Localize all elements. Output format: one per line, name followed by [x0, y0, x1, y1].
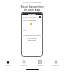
button[interactable]: Account [48, 60, 64, 67]
staticText: Favorites [28, 13, 36, 15]
staticText: Order in seconds [0, 1, 64, 4]
staticText: Sides [23, 29, 28, 31]
staticText: Orders [37, 64, 44, 67]
button[interactable]: Home [0, 60, 16, 67]
staticText: Where do you want your order delivered [23, 34, 41, 41]
staticText: Home [5, 64, 11, 67]
staticText: Account [52, 64, 60, 67]
staticText: Recently ordered [23, 16, 37, 18]
button[interactable]: Search [16, 60, 32, 67]
staticText: Your favorites in one tap [2, 4, 62, 12]
staticText: Search [21, 64, 27, 67]
button[interactable]: Orders [32, 60, 48, 67]
staticText: Pizza Margherita [23, 19, 37, 21]
button[interactable]: Favorites [21, 12, 43, 57]
